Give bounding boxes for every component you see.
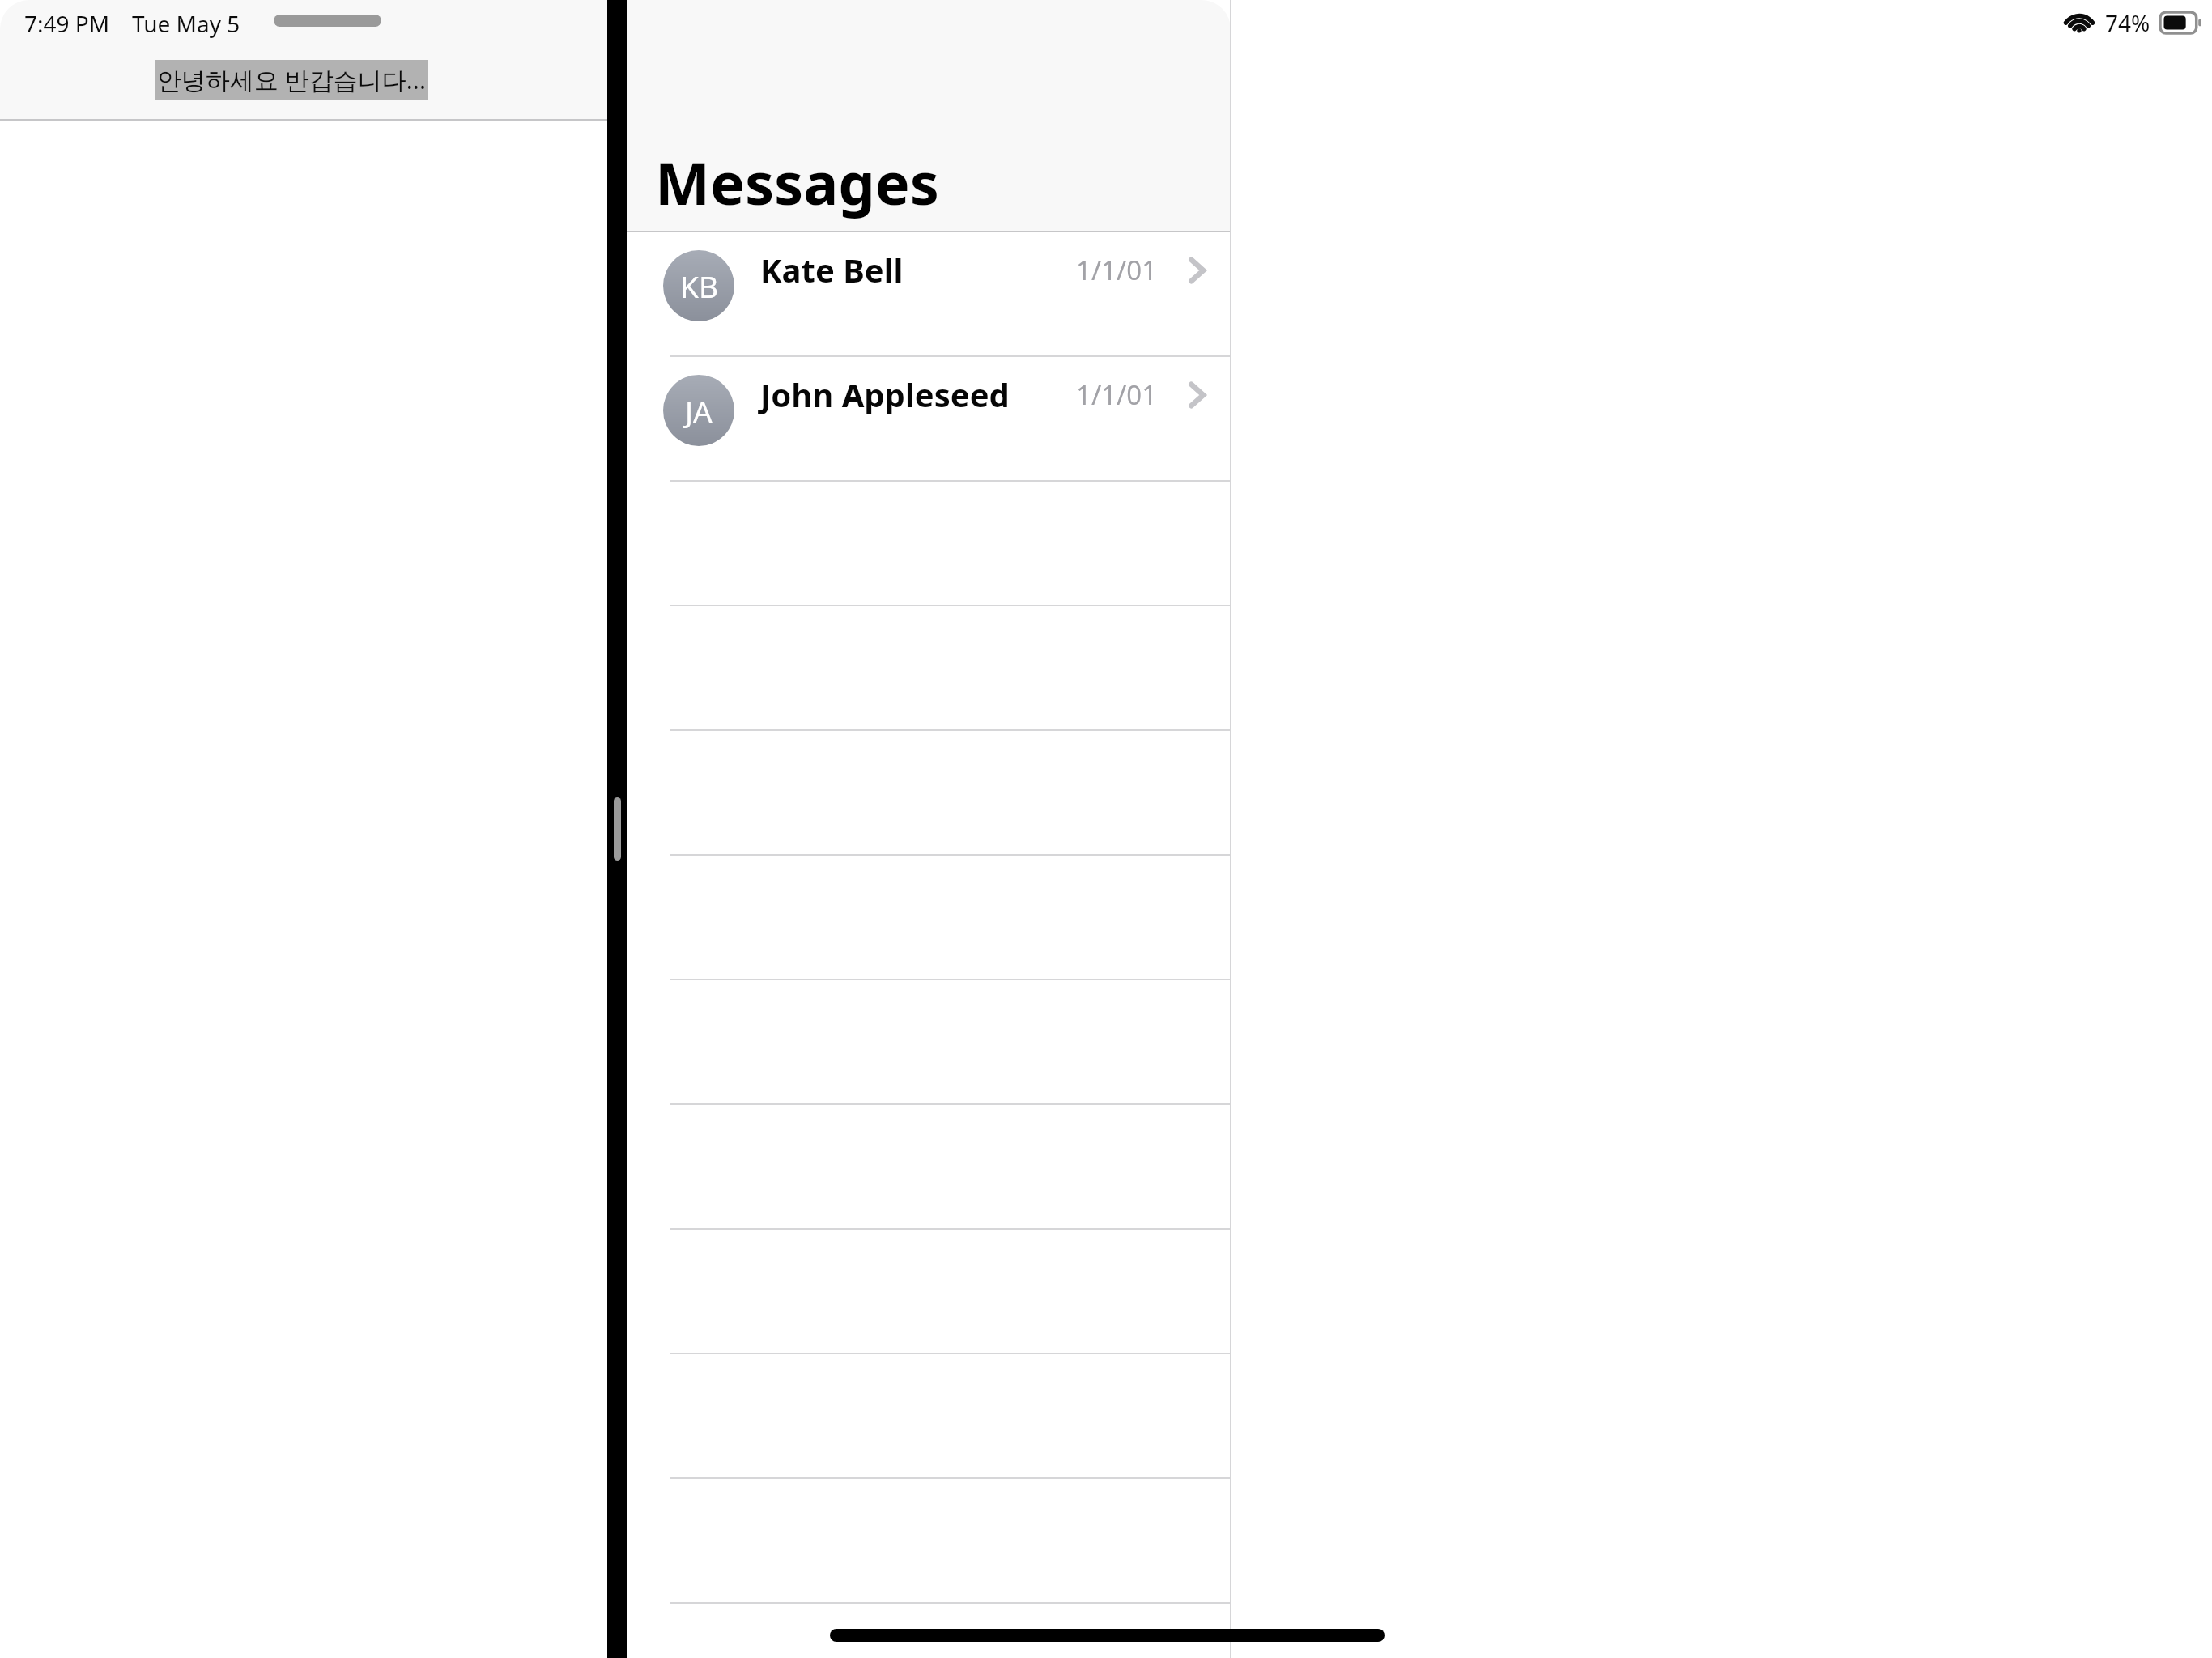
staticText: Messages bbox=[655, 142, 939, 222]
staticText: Tue May 5 bbox=[132, 8, 240, 39]
staticText: 1/1/01 bbox=[1076, 376, 1158, 413]
button[interactable]: Messages bbox=[655, 142, 939, 222]
staticText: 74% bbox=[2105, 7, 2150, 38]
button[interactable]: JA bbox=[627, 357, 1231, 480]
staticText: John Appleseed bbox=[760, 372, 1010, 416]
button[interactable]: 안녕하세요 반갑습니다... bbox=[157, 63, 426, 96]
other: Battery 74 percent bbox=[2160, 12, 2202, 33]
staticText: Kate Bell bbox=[760, 248, 904, 291]
button[interactable]: KB bbox=[627, 232, 1231, 355]
staticText: JA bbox=[685, 390, 713, 431]
staticText: 안녕하세요 반갑습니다... bbox=[157, 63, 426, 96]
button[interactable]: Resize split view bbox=[607, 0, 627, 1658]
other: Wi-Fi bbox=[2065, 11, 2094, 34]
staticText: KB bbox=[680, 266, 718, 306]
staticText: 7:49 PM bbox=[24, 8, 110, 39]
staticText: 1/1/01 bbox=[1076, 252, 1158, 288]
